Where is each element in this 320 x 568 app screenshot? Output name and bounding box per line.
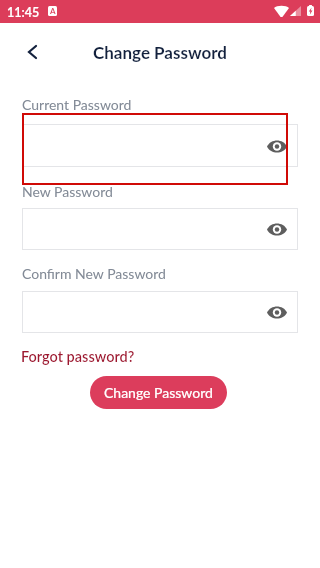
- button[interactable]: Show password: [264, 299, 290, 325]
- button[interactable]: Show password: [22, 208, 298, 250]
- staticText: Change Password: [104, 384, 213, 401]
- staticText: Change Password: [93, 42, 227, 62]
- button[interactable]: Show password: [22, 124, 298, 167]
- staticText: Current Password: [22, 96, 132, 113]
- button[interactable]: Show password: [264, 133, 290, 159]
- staticText: Confirm New Password: [22, 265, 166, 282]
- staticText: Forgot password?: [21, 348, 135, 365]
- button[interactable]: Show password: [264, 216, 290, 242]
- button[interactable]: Back: [18, 38, 46, 66]
- button[interactable]: Change Password: [90, 376, 227, 409]
- staticText: 11:45: [7, 5, 40, 20]
- button[interactable]: Show password: [22, 291, 298, 333]
- staticText: A: [50, 6, 56, 16]
- button[interactable]: Forgot password?: [21, 348, 135, 365]
- staticText: New Password: [22, 183, 113, 200]
